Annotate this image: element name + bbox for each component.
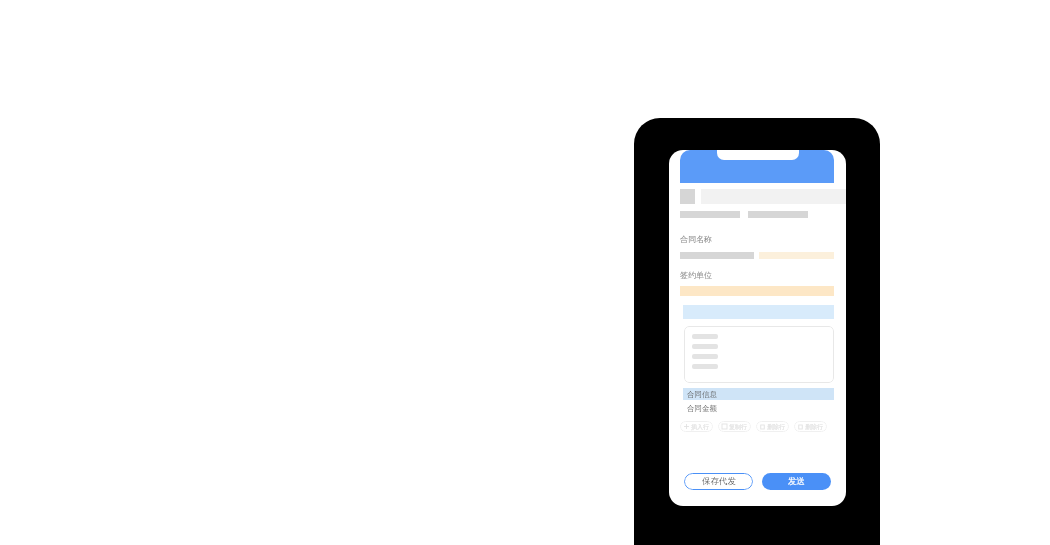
staticText: 发送 <box>788 476 805 487</box>
other: 复制行 <box>722 424 727 429</box>
staticText: 删除行 <box>767 423 785 431</box>
button[interactable]: 删除行 <box>756 421 789 432</box>
staticText: 插入行 <box>691 423 709 431</box>
staticText: 删除行 <box>805 423 823 431</box>
button[interactable]: 保存代发 <box>684 473 753 490</box>
staticText: 合同金额 <box>687 404 717 413</box>
staticText: 保存代发 <box>702 476 736 487</box>
other: 删除行 <box>798 424 803 429</box>
staticText: 合同名称 <box>680 234 712 244</box>
button[interactable]: 合同信息 <box>683 388 834 400</box>
button[interactable]: 合同金额 <box>687 404 717 413</box>
other: 删除行 <box>760 424 765 429</box>
button[interactable]: 复制行 <box>718 421 751 432</box>
staticText: 复制行 <box>729 423 747 431</box>
button[interactable] <box>684 326 834 383</box>
other: 插入行 <box>684 424 689 429</box>
button[interactable]: 插入行 <box>680 421 713 432</box>
staticText: 签约单位 <box>680 270 712 280</box>
staticText: 合同信息 <box>687 390 717 399</box>
button[interactable]: 删除行 <box>794 421 827 432</box>
button[interactable]: 发送 <box>762 473 831 490</box>
